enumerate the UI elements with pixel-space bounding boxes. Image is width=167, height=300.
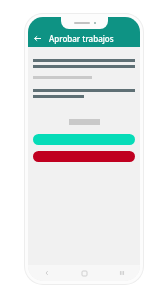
button[interactable]: Recent apps bbox=[103, 265, 140, 281]
button[interactable]: Rechazar bbox=[33, 151, 135, 162]
button[interactable]: Home bbox=[66, 265, 103, 281]
button[interactable]: Aprobar bbox=[33, 134, 135, 145]
staticText: Aprobar trabajos bbox=[49, 33, 114, 44]
button[interactable]: Back bbox=[31, 32, 44, 45]
button[interactable]: Back bbox=[28, 265, 66, 281]
